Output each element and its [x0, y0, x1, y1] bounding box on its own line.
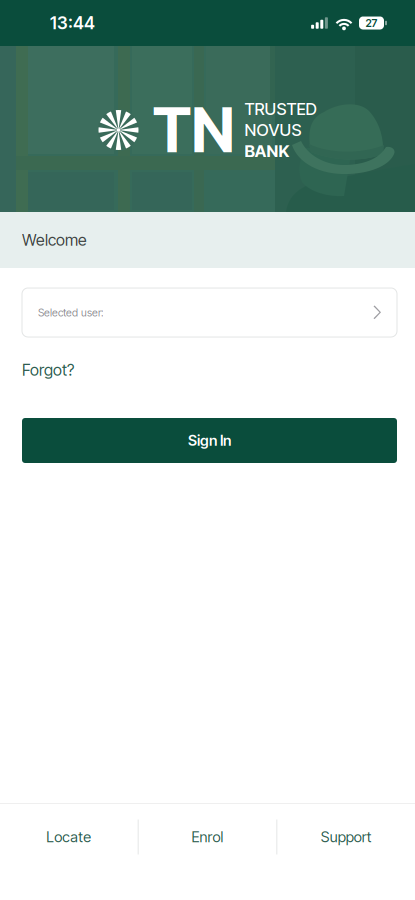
button[interactable]: Selected user: — [22, 288, 397, 337]
button[interactable]: Locate — [0, 804, 138, 870]
staticText: BANK — [244, 141, 289, 161]
staticText: Support — [321, 828, 372, 846]
staticText: Sign In — [188, 432, 231, 449]
staticText: Forgot? — [22, 360, 74, 380]
staticText: Welcome — [22, 230, 87, 250]
staticText: TN — [152, 93, 234, 167]
button[interactable]: Enrol — [139, 804, 276, 870]
button[interactable]: Support — [277, 804, 415, 870]
staticText: Selected user: — [38, 306, 104, 319]
staticText: 13:44 — [50, 12, 95, 33]
staticText: Locate — [46, 828, 91, 846]
staticText: NOVUS — [244, 120, 301, 140]
staticText: TRUSTED — [244, 99, 316, 119]
button[interactable]: Forgot? — [22, 358, 74, 382]
staticText: 27 — [365, 16, 377, 29]
staticText: Enrol — [191, 828, 223, 846]
button[interactable]: Sign In — [22, 418, 397, 463]
